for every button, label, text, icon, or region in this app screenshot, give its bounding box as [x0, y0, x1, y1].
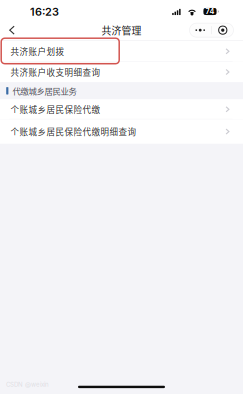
button[interactable]: Back: [0, 20, 24, 41]
staticText: 共济管理: [101, 23, 141, 37]
button[interactable]: 个账城乡居民保险代缴: [0, 99, 243, 119]
button[interactable]: 共济账户划拨: [0, 41, 243, 62]
staticText: 74: [205, 7, 214, 16]
button[interactable]: Close: [212, 23, 234, 37]
staticText: 共济账户收支明细查询: [10, 66, 100, 78]
staticText: 个账城乡居民保险代缴: [10, 103, 100, 115]
staticText: 代缴城乡居民业务: [13, 85, 77, 97]
staticText: 16:23: [30, 5, 59, 18]
button[interactable]: 个账城乡居民保险代缴明细查询: [0, 119, 243, 144]
staticText: CSDN @weixin: [6, 381, 49, 388]
staticText: 共济账户划拨: [10, 45, 64, 57]
button[interactable]: More: [189, 23, 211, 37]
staticText: 个账城乡居民保险代缴明细查询: [10, 125, 136, 138]
button[interactable]: 共济账户收支明细查询: [0, 62, 243, 82]
